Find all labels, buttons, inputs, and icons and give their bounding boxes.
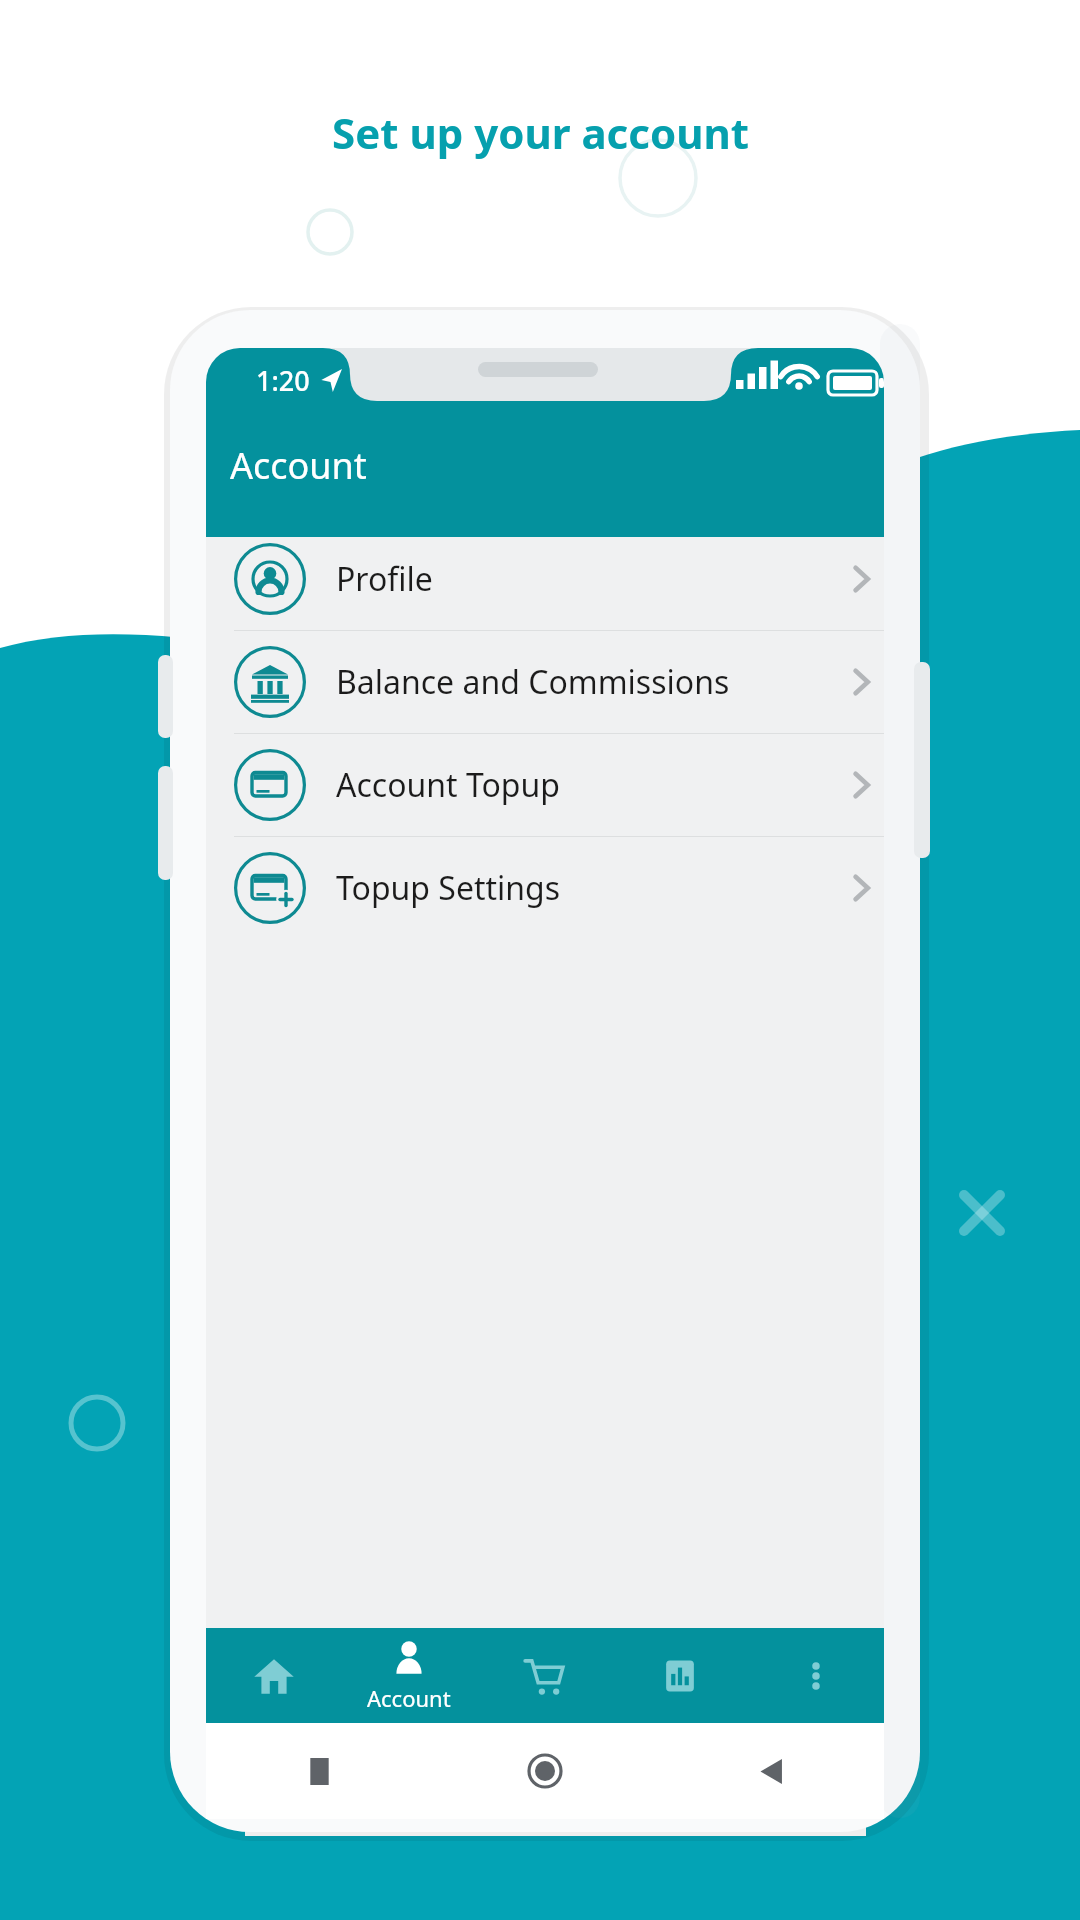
button[interactable]: More options: [748, 1628, 884, 1723]
staticText: Set up your account: [332, 104, 749, 161]
staticText: Account: [230, 441, 367, 490]
staticText: 1:20: [256, 362, 310, 399]
button[interactable]: Recent apps: [206, 1723, 432, 1819]
button[interactable]: Profile: [206, 528, 884, 630]
staticText: Profile: [336, 557, 433, 601]
button[interactable]: Cart: [476, 1628, 612, 1723]
button[interactable]: Home: [206, 1628, 341, 1723]
button[interactable]: Account Topup: [206, 734, 884, 836]
button[interactable]: Reports: [612, 1628, 748, 1723]
button[interactable]: Back: [658, 1723, 884, 1819]
staticText: Account Topup: [336, 763, 561, 807]
staticText: Account: [367, 1683, 451, 1713]
staticText: Balance and Commissions: [336, 660, 730, 704]
button[interactable]: Account: [341, 1628, 476, 1723]
button[interactable]: Home: [432, 1723, 658, 1819]
button[interactable]: Balance and Commissions: [206, 631, 884, 733]
staticText: Topup Settings: [336, 866, 561, 910]
button[interactable]: Topup Settings: [206, 837, 884, 939]
